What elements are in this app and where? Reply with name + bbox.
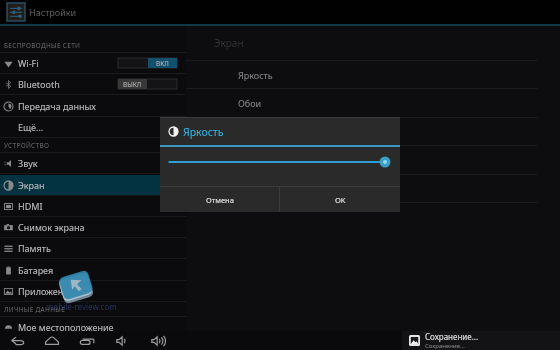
staticText: Яркость	[183, 125, 224, 139]
button[interactable]: Volume up	[148, 331, 167, 350]
button[interactable]: Recent apps	[77, 331, 96, 350]
staticText: Приложения	[18, 285, 75, 297]
button[interactable]: Wi-Fi	[0, 53, 186, 73]
button[interactable]: Сохранение...	[402, 331, 560, 350]
staticText: Память	[18, 242, 51, 254]
staticText: Отмена	[206, 195, 234, 205]
button[interactable]: Снимок экрана	[0, 217, 186, 237]
button[interactable]: Ещё...	[0, 117, 186, 137]
button[interactable]: Мое местоположение	[0, 317, 186, 337]
staticText: Звук	[18, 157, 38, 169]
button[interactable]: OK	[280, 187, 400, 212]
button[interactable]: Приложения	[0, 281, 186, 301]
staticText: Экран	[18, 179, 45, 191]
staticText: БЕСПРОВОДНЫЕ СЕТИ	[4, 41, 81, 50]
button[interactable]	[238, 175, 560, 202]
button[interactable]: Обои	[238, 89, 560, 116]
staticText: Экран	[214, 36, 244, 50]
staticText: Сохранение...	[425, 331, 479, 342]
button[interactable]: Home	[42, 331, 61, 350]
staticText: Bluetooth	[18, 78, 60, 90]
staticText: Яркость	[238, 69, 273, 81]
button[interactable]: Экран	[0, 175, 186, 195]
button[interactable]: Настройки	[0, 0, 560, 24]
staticText: OK	[335, 195, 346, 205]
button[interactable]: Отмена	[160, 187, 279, 212]
button[interactable]: HDMI	[0, 196, 186, 216]
staticText: Мое местоположение	[18, 321, 114, 333]
staticText: Снимок экрана	[18, 221, 85, 233]
staticText: Сохранение...	[425, 342, 465, 350]
button[interactable]: Батарея	[0, 260, 186, 280]
staticText: mobile-review.com	[46, 301, 117, 312]
button[interactable]: Volume down	[113, 331, 132, 350]
staticText: УСТРОЙСТВО	[4, 141, 50, 150]
staticText: Wi-Fi	[18, 57, 39, 69]
button[interactable]: Яркость	[238, 61, 560, 88]
staticText: ВЫКЛ	[123, 80, 142, 89]
staticText: Батарея	[18, 264, 54, 276]
button[interactable]: Передача данных	[0, 96, 186, 116]
button[interactable]	[238, 118, 560, 145]
staticText: ВКЛ	[156, 59, 169, 68]
staticText: Настройки	[29, 6, 77, 18]
button[interactable]: Звук	[0, 153, 186, 173]
staticText: Обои	[238, 97, 262, 109]
button[interactable]: Память	[0, 238, 186, 258]
button[interactable]	[238, 146, 560, 173]
staticText: HDMI	[18, 200, 43, 212]
staticText: Передача данных	[18, 100, 96, 112]
staticText: ЛИЧНЫЕ ДАННЫЕ	[4, 305, 66, 314]
button[interactable]	[238, 203, 560, 230]
staticText: Ещё...	[18, 121, 44, 133]
button[interactable]: Bluetooth	[0, 74, 186, 94]
button[interactable]: Back	[8, 331, 27, 350]
